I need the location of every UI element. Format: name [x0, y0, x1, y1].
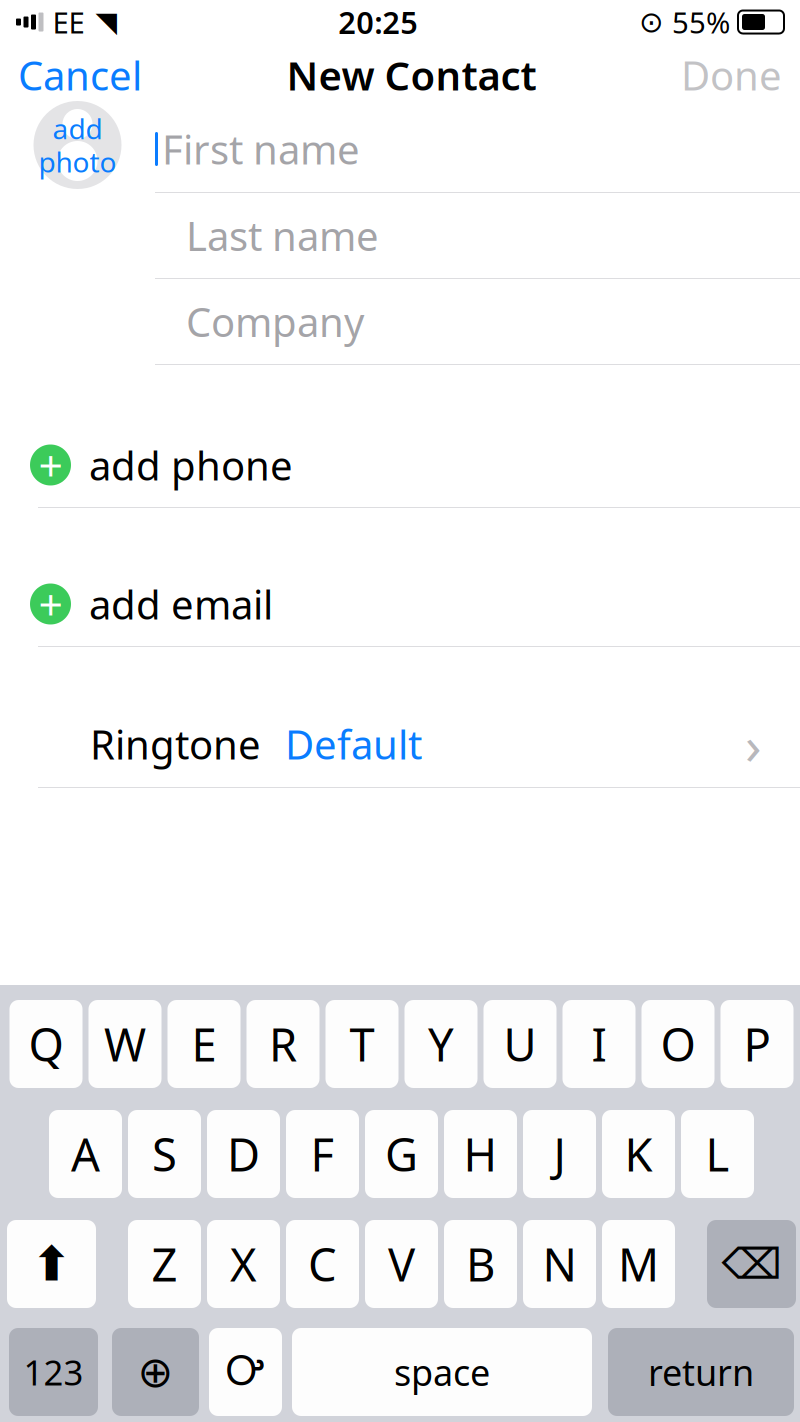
staticText: K: [624, 1124, 652, 1184]
button[interactable]: C: [286, 1220, 359, 1308]
button[interactable]: Next keyboard: [112, 1328, 199, 1416]
staticText: +: [38, 437, 62, 493]
staticText: Ringtone: [90, 717, 261, 770]
staticText: H: [463, 1124, 497, 1184]
button[interactable]: space: [292, 1328, 592, 1416]
button[interactable]: W: [88, 1000, 161, 1088]
staticText: N: [542, 1234, 576, 1294]
staticText: First name: [162, 122, 360, 175]
button[interactable]: Last name: [0, 193, 800, 278]
staticText: photo: [38, 143, 116, 180]
staticText: return: [648, 1348, 754, 1396]
staticText: T: [349, 1014, 374, 1074]
button[interactable]: Y: [404, 1000, 477, 1088]
button[interactable]: Dictate: [209, 1328, 282, 1416]
staticText: B: [466, 1234, 495, 1294]
button[interactable]: +: [0, 562, 800, 647]
button[interactable]: First name: [155, 106, 800, 192]
button[interactable]: H: [444, 1110, 517, 1198]
button[interactable]: R: [246, 1000, 319, 1088]
staticText: J: [553, 1124, 565, 1184]
staticText: Ꭴ: [226, 1352, 265, 1391]
staticText: Z: [151, 1234, 177, 1294]
staticText: 123: [23, 1349, 83, 1395]
staticText: V: [388, 1234, 415, 1294]
staticText: Y: [428, 1014, 454, 1074]
button[interactable]: S: [128, 1110, 201, 1198]
button[interactable]: Z: [128, 1220, 201, 1308]
staticText: D: [227, 1124, 260, 1184]
staticText: A: [71, 1124, 100, 1184]
staticText: Company: [186, 295, 364, 348]
staticText: O: [660, 1014, 695, 1074]
staticText: R: [269, 1014, 297, 1074]
button[interactable]: 123: [9, 1328, 98, 1416]
staticText: P: [743, 1014, 770, 1074]
staticText: ⊙: [639, 5, 664, 39]
staticText: I: [591, 1014, 606, 1074]
staticText: Cancel: [18, 48, 142, 101]
staticText: Default: [285, 717, 422, 770]
button[interactable]: Delete: [707, 1220, 796, 1308]
staticText: ⌫: [721, 1240, 781, 1288]
staticText: Q: [28, 1014, 63, 1074]
staticText: 20:25: [338, 2, 418, 42]
button[interactable]: Done: [663, 38, 800, 111]
button[interactable]: P: [720, 1000, 793, 1088]
staticText: ◥: [95, 6, 117, 38]
staticText: ›: [745, 709, 762, 779]
button[interactable]: Company: [0, 279, 800, 364]
staticText: C: [308, 1234, 337, 1294]
button[interactable]: V: [365, 1220, 438, 1308]
button[interactable]: X: [207, 1220, 280, 1308]
button[interactable]: Q: [9, 1000, 82, 1088]
button[interactable]: D: [207, 1110, 280, 1198]
staticText: +: [38, 576, 62, 632]
button[interactable]: B: [444, 1220, 517, 1308]
staticText: space: [394, 1348, 490, 1396]
button[interactable]: +: [0, 423, 800, 508]
button[interactable]: M: [602, 1220, 675, 1308]
button[interactable]: I: [562, 1000, 635, 1088]
staticText: add phone: [89, 438, 293, 491]
button[interactable]: L: [681, 1110, 754, 1198]
staticText: Done: [681, 48, 782, 101]
staticText: add: [52, 110, 102, 147]
button[interactable]: U: [483, 1000, 556, 1088]
button[interactable]: O: [641, 1000, 714, 1088]
staticText: ⊕: [137, 1348, 173, 1396]
button[interactable]: J: [523, 1110, 596, 1198]
staticText: X: [230, 1234, 257, 1294]
button[interactable]: E: [167, 1000, 240, 1088]
staticText: add email: [89, 577, 273, 630]
staticText: New Contact: [286, 48, 536, 101]
button[interactable]: F: [286, 1110, 359, 1198]
button[interactable]: Add photo: [33, 101, 121, 189]
button[interactable]: A: [49, 1110, 122, 1198]
button[interactable]: Shift: [7, 1220, 96, 1308]
staticText: L: [705, 1124, 729, 1184]
staticText: ⬆: [31, 1237, 71, 1291]
button[interactable]: N: [523, 1220, 596, 1308]
staticText: E: [191, 1014, 216, 1074]
staticText: F: [310, 1124, 334, 1184]
button[interactable]: K: [602, 1110, 675, 1198]
button[interactable]: Cancel: [0, 38, 160, 111]
button[interactable]: Ringtone: [0, 701, 800, 788]
staticText: EE: [52, 2, 84, 41]
button[interactable]: return: [608, 1328, 794, 1416]
staticText: W: [104, 1014, 146, 1074]
staticText: G: [385, 1124, 418, 1184]
staticText: 55%: [672, 2, 730, 41]
staticText: M: [618, 1234, 659, 1294]
staticText: S: [152, 1124, 177, 1184]
staticText: Last name: [186, 209, 379, 262]
staticText: U: [503, 1014, 536, 1074]
button[interactable]: T: [325, 1000, 398, 1088]
button[interactable]: G: [365, 1110, 438, 1198]
